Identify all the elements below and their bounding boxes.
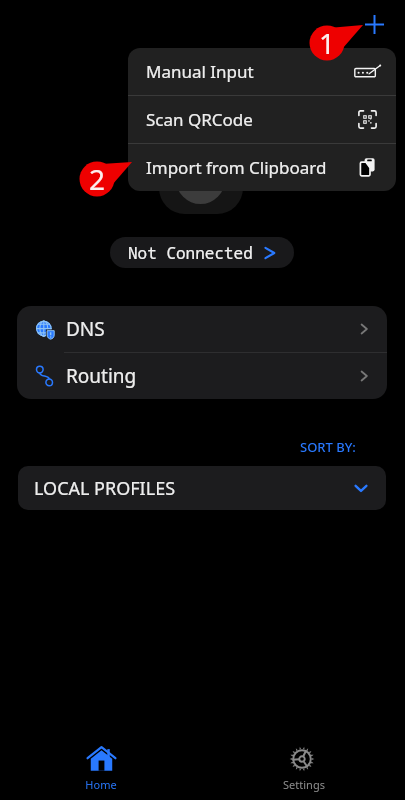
staticText: DNS — [66, 316, 105, 342]
staticText: 2 — [89, 160, 106, 198]
button[interactable]: Connect — [159, 130, 243, 214]
button[interactable]: DNS — [17, 306, 387, 352]
staticText: SORT BY: — [300, 438, 356, 456]
staticText: Not Connected — [128, 242, 253, 264]
staticText: LOCAL PROFILES — [34, 476, 176, 501]
button[interactable]: Not Connected — [110, 237, 294, 268]
staticText: Manual Input — [146, 60, 254, 83]
button[interactable]: Add profile — [358, 8, 391, 41]
button[interactable]: LOCAL PROFILES — [18, 466, 386, 510]
staticText: Import from Clipboard — [146, 156, 327, 179]
staticText: Routing — [66, 363, 137, 389]
button[interactable]: Scan QRCode — [128, 96, 396, 143]
staticText: Settings — [283, 777, 325, 792]
button[interactable]: Home — [0, 744, 202, 800]
button[interactable]: Manual Input — [128, 48, 396, 95]
button[interactable]: Import from Clipboard — [128, 144, 396, 191]
staticText: Home — [85, 777, 117, 792]
button[interactable]: Settings — [202, 744, 405, 800]
button[interactable]: Routing — [17, 353, 387, 399]
staticText: 1 — [319, 24, 336, 62]
staticText: Scan QRCode — [146, 108, 253, 131]
